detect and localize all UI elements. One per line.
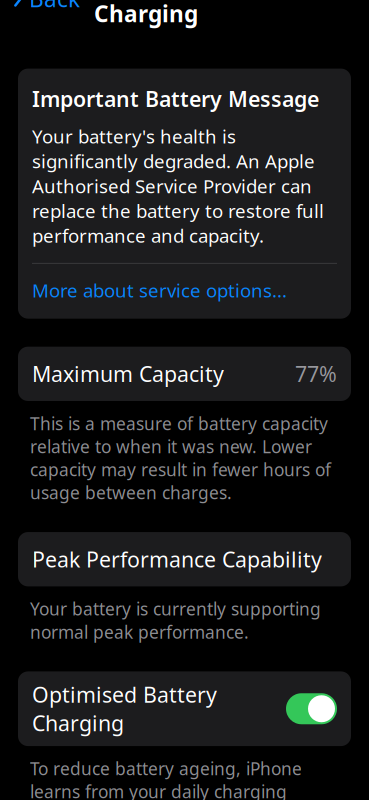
staticText: Peak Performance Capability <box>32 545 322 573</box>
staticText: 77% <box>295 360 337 388</box>
staticText: Back <box>29 0 80 13</box>
button[interactable]: Optimised Battery Charging <box>18 671 351 746</box>
staticText: Maximum Capacity <box>32 360 224 388</box>
staticText: Optimised Battery Charging <box>32 680 217 737</box>
button[interactable]: More about service options... <box>32 264 287 319</box>
staticText: Important Battery Message <box>32 85 319 113</box>
staticText: Your battery is currently supporting nor… <box>30 597 321 643</box>
staticText: To reduce battery ageing, iPhone learns … <box>30 757 326 800</box>
button[interactable]: Back <box>12 0 88 19</box>
staticText: This is a measure of battery capacity re… <box>30 412 331 504</box>
staticText: Battery Health & Charging <box>94 0 286 29</box>
staticText: Your battery's health is significantly d… <box>32 124 324 248</box>
staticText: More about service options... <box>32 278 287 303</box>
